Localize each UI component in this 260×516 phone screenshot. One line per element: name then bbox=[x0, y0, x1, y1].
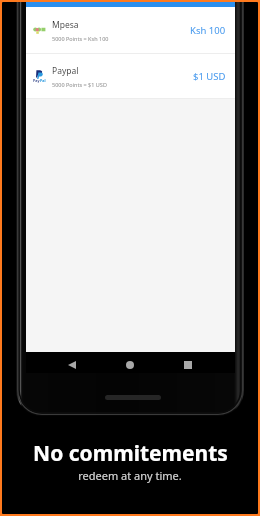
staticText: Paypal bbox=[52, 65, 79, 77]
button[interactable]: Home bbox=[118, 354, 141, 375]
staticText: Pal bbox=[40, 78, 46, 83]
staticText: Ksh 100 bbox=[190, 24, 226, 37]
staticText: redeem at any time. bbox=[78, 468, 182, 483]
button[interactable]: Back bbox=[60, 354, 83, 375]
staticText: Pay bbox=[33, 78, 40, 83]
staticText: 5000 Points = Ksh 100 bbox=[52, 35, 109, 42]
button[interactable]: Recent apps bbox=[176, 354, 199, 375]
staticText: 5000 Points = $1 USD bbox=[52, 81, 107, 88]
button[interactable]: Mpesa bbox=[26, 7, 235, 53]
staticText: No commitements bbox=[33, 439, 228, 468]
staticText: Mpesa bbox=[52, 19, 79, 31]
button[interactable]: Pay bbox=[26, 54, 235, 98]
staticText: $1 USD bbox=[193, 70, 226, 83]
